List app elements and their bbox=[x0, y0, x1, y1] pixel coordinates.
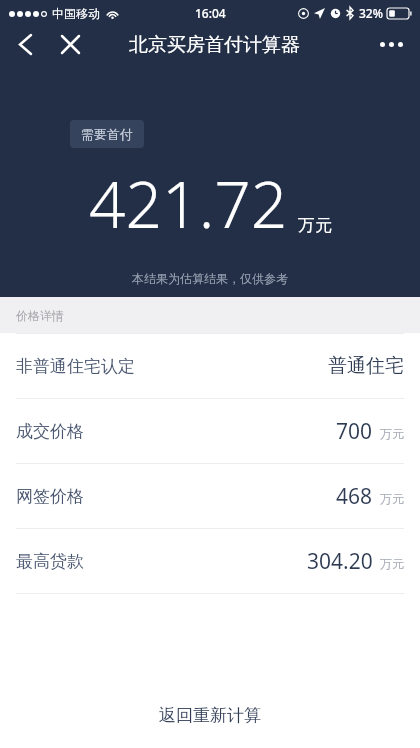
staticText: 万元 bbox=[380, 426, 404, 441]
button[interactable]: More options bbox=[370, 26, 412, 63]
staticText: 需要首付 bbox=[81, 126, 133, 142]
staticText: 16:04 bbox=[195, 5, 226, 21]
staticText: 成交价格 bbox=[16, 421, 84, 442]
button[interactable]: 成交价格 bbox=[0, 399, 420, 463]
staticText: 421.72 bbox=[89, 160, 288, 247]
staticText: 最高贷款 bbox=[16, 551, 84, 572]
staticText: 万元 bbox=[298, 215, 332, 236]
staticText: 网签价格 bbox=[16, 486, 84, 507]
staticText: 非普通住宅认定 bbox=[16, 356, 135, 377]
staticText: 返回重新计算 bbox=[159, 705, 261, 726]
staticText: 万元 bbox=[380, 556, 404, 571]
button[interactable]: 网签价格 bbox=[0, 464, 420, 528]
staticText: 中国移动 bbox=[52, 6, 100, 21]
button[interactable]: Close bbox=[51, 26, 89, 63]
button[interactable]: 最高贷款 bbox=[0, 529, 420, 593]
staticText: 本结果为估算结果，仅供参考 bbox=[132, 271, 288, 286]
button[interactable]: 返回重新计算 bbox=[0, 682, 420, 748]
staticText: 价格详情 bbox=[16, 308, 64, 323]
staticText: 万元 bbox=[380, 491, 404, 506]
staticText: 北京买房首付计算器 bbox=[129, 33, 300, 57]
button[interactable]: 非普通住宅认定 bbox=[0, 334, 420, 398]
staticText: 普通住宅 bbox=[328, 354, 404, 378]
button[interactable]: Back bbox=[6, 26, 44, 63]
staticText: 468 bbox=[336, 482, 373, 511]
staticText: 32% bbox=[359, 5, 383, 21]
staticText: 304.20 bbox=[307, 547, 373, 576]
staticText: 700 bbox=[336, 417, 373, 446]
